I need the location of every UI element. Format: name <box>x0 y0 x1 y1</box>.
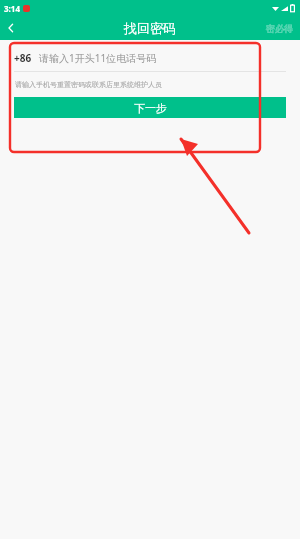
staticText: 密必得 <box>266 23 293 34</box>
staticText: 找回密码 <box>124 20 176 36</box>
staticText: +86 <box>14 51 32 65</box>
staticText: 3:14 <box>4 3 20 14</box>
staticText: 下一步 <box>134 101 167 115</box>
button[interactable]: Back <box>0 17 22 39</box>
staticText: 请输入手机号重置密码或联系店里系统维护人员 <box>15 80 162 89</box>
staticText: 请输入1开头11位电话号码 <box>39 51 157 65</box>
button[interactable]: 下一步 <box>14 97 286 118</box>
